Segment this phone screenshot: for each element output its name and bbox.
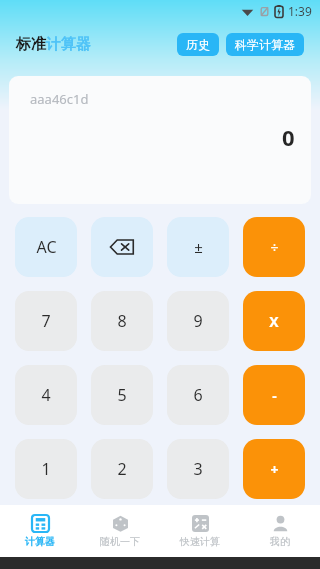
staticText: + (270, 460, 279, 479)
button[interactable]: 5 (91, 365, 153, 425)
staticText: 标准 (16, 35, 46, 54)
staticText: 科学计算器 (235, 37, 295, 52)
staticText: aaa46c1d (30, 90, 89, 108)
button[interactable]: 历史 (177, 33, 219, 56)
button[interactable]: 计算器 (0, 505, 80, 557)
button[interactable]: - (243, 365, 305, 425)
staticText: 5 (117, 384, 127, 406)
button[interactable]: X (243, 291, 305, 351)
staticText: 6 (193, 384, 203, 406)
button[interactable]: 科学计算器 (226, 33, 304, 56)
staticText: ÷ (270, 238, 279, 257)
button[interactable]: ÷ (243, 217, 305, 277)
button[interactable]: 9 (167, 291, 229, 351)
staticText: 我的 (270, 535, 290, 548)
staticText: 7 (41, 310, 51, 332)
button[interactable]: 6 (167, 365, 229, 425)
button[interactable]: aaa46c1d (9, 76, 311, 204)
staticText: ± (194, 237, 203, 257)
staticText: 1 (41, 458, 51, 480)
button[interactable]: 随机一下 (80, 505, 160, 557)
button[interactable]: Backspace (91, 217, 153, 277)
button[interactable]: ± (167, 217, 229, 277)
button[interactable]: 快速计算 (160, 505, 240, 557)
button[interactable]: 2 (91, 439, 153, 499)
button[interactable]: 3 (167, 439, 229, 499)
staticText: X (269, 312, 279, 331)
staticText: 3 (193, 458, 203, 480)
button[interactable]: 我的 (240, 505, 320, 557)
staticText: 0 (282, 122, 295, 152)
staticText: - (272, 386, 277, 405)
staticText: 1:39 (288, 3, 312, 19)
staticText: 8 (117, 310, 127, 332)
button[interactable]: 7 (15, 291, 77, 351)
button[interactable]: 8 (91, 291, 153, 351)
button[interactable]: AC (15, 217, 77, 277)
button[interactable]: 1 (15, 439, 77, 499)
staticText: 随机一下 (100, 535, 140, 548)
staticText: 快速计算 (180, 535, 220, 548)
staticText: AC (36, 236, 57, 258)
staticText: 9 (193, 310, 203, 332)
staticText: 历史 (186, 37, 210, 52)
button[interactable]: + (243, 439, 305, 499)
staticText: 4 (41, 384, 51, 406)
staticText: 计算器 (25, 535, 55, 548)
staticText: 计算器 (46, 35, 91, 54)
staticText: 2 (117, 458, 127, 480)
button[interactable]: 4 (15, 365, 77, 425)
